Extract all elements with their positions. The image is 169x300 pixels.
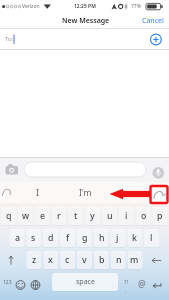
staticText: 123 (3, 279, 12, 286)
staticText: x (48, 254, 53, 266)
button[interactable] (13, 273, 28, 291)
staticText: l (150, 232, 153, 244)
staticText: o (141, 210, 147, 222)
staticText: q (6, 210, 12, 222)
staticText: s (31, 232, 36, 244)
button[interactable] (28, 273, 43, 291)
button[interactable]: h (94, 229, 109, 247)
button[interactable]: e (35, 207, 50, 225)
staticText: n (116, 254, 122, 266)
staticText: To: (5, 35, 14, 43)
button[interactable]: x (43, 251, 58, 269)
staticText: j (116, 232, 119, 244)
button[interactable]: g (77, 229, 92, 247)
button[interactable]: m (127, 251, 142, 269)
staticText: ?! (124, 278, 128, 285)
staticText: y (90, 210, 95, 222)
staticText: g (82, 232, 88, 244)
staticText: b (99, 254, 105, 266)
button[interactable]: o (136, 207, 151, 225)
staticText: Verizon (22, 3, 40, 10)
button[interactable]: I (26, 182, 48, 203)
staticText: . (125, 287, 127, 294)
button[interactable]: To: (0, 29, 169, 49)
staticText: space (76, 277, 95, 287)
button[interactable]: @ (134, 273, 149, 291)
staticText: New Message (62, 16, 110, 26)
staticText: Cancel (142, 16, 164, 26)
staticText: I'm (79, 187, 92, 199)
button[interactable]: d (43, 229, 58, 247)
button[interactable]: y (85, 207, 100, 225)
staticText: 77% (131, 3, 141, 10)
staticText: r (57, 210, 61, 222)
staticText: v (82, 254, 87, 266)
staticText: k (132, 232, 137, 244)
button[interactable]: l (144, 229, 159, 247)
button[interactable]: c (60, 251, 75, 269)
staticText: @ (138, 278, 146, 290)
button[interactable]: 123 (0, 273, 14, 291)
button[interactable]: w (18, 207, 33, 225)
button[interactable]: i (119, 207, 134, 225)
staticText: 12:25 PM (74, 3, 96, 10)
button[interactable]: j (110, 229, 125, 247)
button[interactable]: ?! (119, 273, 133, 293)
button[interactable]: q (1, 207, 16, 225)
staticText: d (48, 232, 54, 244)
button[interactable]: a (10, 229, 25, 247)
staticText: f (66, 232, 70, 244)
button[interactable]: v (77, 251, 92, 269)
staticText: I (36, 187, 39, 199)
staticText: u (107, 210, 113, 222)
staticText: e (40, 210, 46, 222)
button[interactable] (1, 251, 22, 269)
staticText: i (125, 210, 128, 222)
button[interactable] (149, 273, 168, 291)
button[interactable]: s (26, 229, 41, 247)
button[interactable]: u (102, 207, 117, 225)
button[interactable]: r (51, 207, 66, 225)
button[interactable] (146, 251, 168, 269)
button[interactable]: Cancel (142, 16, 164, 26)
staticText: a (15, 232, 21, 244)
button[interactable]: b (94, 251, 109, 269)
button[interactable]: f (60, 229, 75, 247)
button[interactable]: t (68, 207, 83, 225)
staticText: m (130, 254, 139, 266)
staticText: z (32, 254, 37, 266)
button[interactable]: z (27, 251, 42, 269)
staticText: p (157, 210, 163, 222)
staticText: t (74, 210, 78, 222)
button[interactable]: n (111, 251, 126, 269)
button[interactable]: I'm (74, 182, 96, 203)
staticText: c (65, 254, 70, 266)
button[interactable]: k (127, 229, 142, 247)
button[interactable]: space (52, 273, 118, 291)
staticText: w (22, 210, 30, 222)
button[interactable]: p (152, 207, 167, 225)
staticText: h (99, 232, 105, 244)
